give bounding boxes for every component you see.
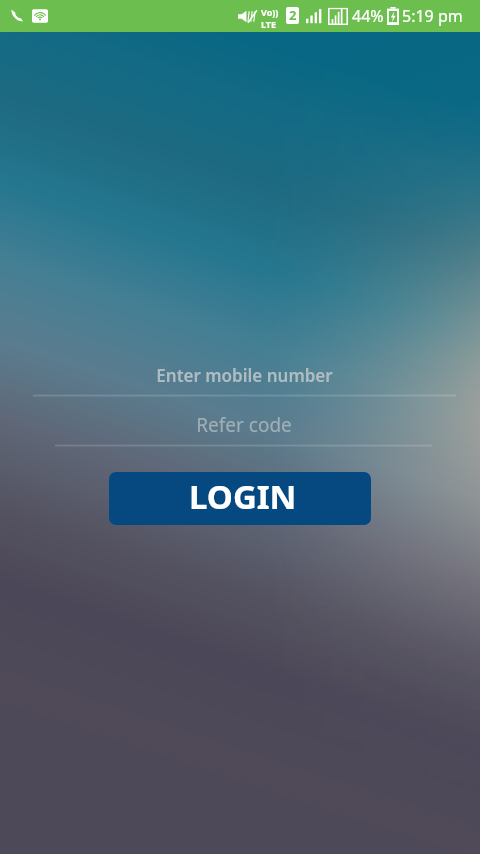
button[interactable]: LOGIN [109, 472, 371, 525]
staticText: Enter mobile number [156, 364, 333, 387]
staticText: LTE [261, 18, 277, 30]
staticText: 2 [289, 7, 297, 23]
other: Call [10, 8, 25, 24]
staticText: LOGIN [189, 474, 297, 519]
other: Wi-Fi [32, 8, 49, 24]
staticText: Vo)) [261, 6, 279, 18]
staticText: Refer code [196, 412, 292, 438]
staticText: 44% [352, 5, 384, 27]
button[interactable]: Refer code [196, 412, 292, 438]
button[interactable]: Enter mobile number [156, 364, 333, 387]
staticText: 5:19 pm [402, 5, 463, 27]
